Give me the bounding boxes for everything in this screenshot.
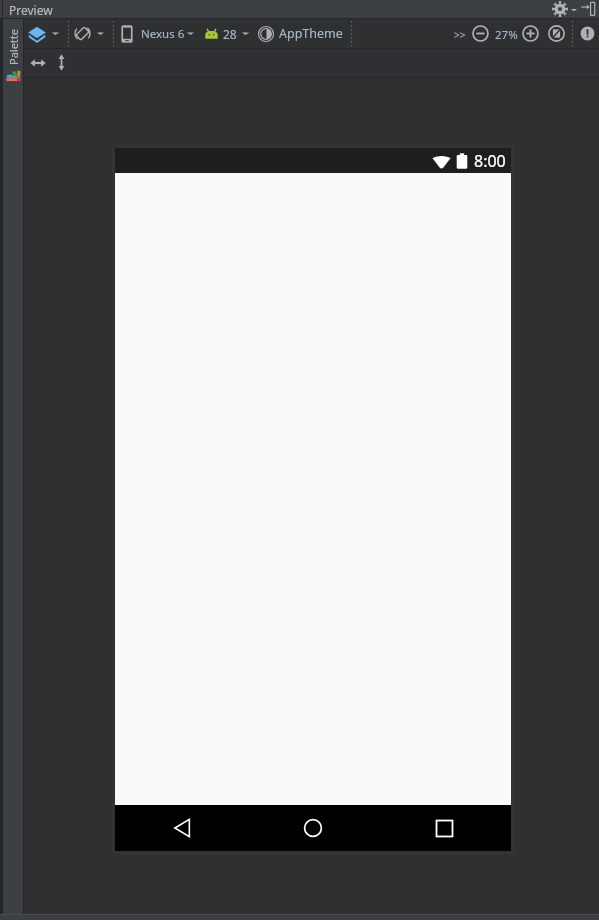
staticText: 8:00 [474,150,506,172]
button[interactable]: Issues [580,26,595,41]
button[interactable]: Preview settings [552,1,568,17]
button[interactable]: Zoom in [522,25,539,42]
button[interactable]: Zoom out [472,25,489,42]
button[interactable]: Palette [3,19,23,914]
button[interactable]: Back [162,808,202,848]
staticText: 28 [223,26,237,42]
button[interactable]: 28 [205,22,250,45]
staticText: Nexus 6 [141,26,185,42]
staticText: 27% [495,27,518,43]
staticText: Palette [6,28,21,65]
button[interactable]: >> [454,28,466,42]
button[interactable]: Design surface mode [28,22,60,45]
button[interactable]: Nexus 6 [120,22,195,45]
staticText: AppTheme [279,25,343,42]
button[interactable]: Adjust height [56,54,67,71]
staticText: Preview [9,2,53,18]
button[interactable]: Orientation [74,22,105,45]
button[interactable]: Adjust width [30,56,46,70]
button[interactable]: AppTheme [258,22,343,45]
button[interactable]: Home [293,808,333,848]
button[interactable]: Zoom to fit screen [548,25,565,42]
button[interactable]: Hide panel [580,2,596,16]
button[interactable]: Recent apps [424,808,464,848]
